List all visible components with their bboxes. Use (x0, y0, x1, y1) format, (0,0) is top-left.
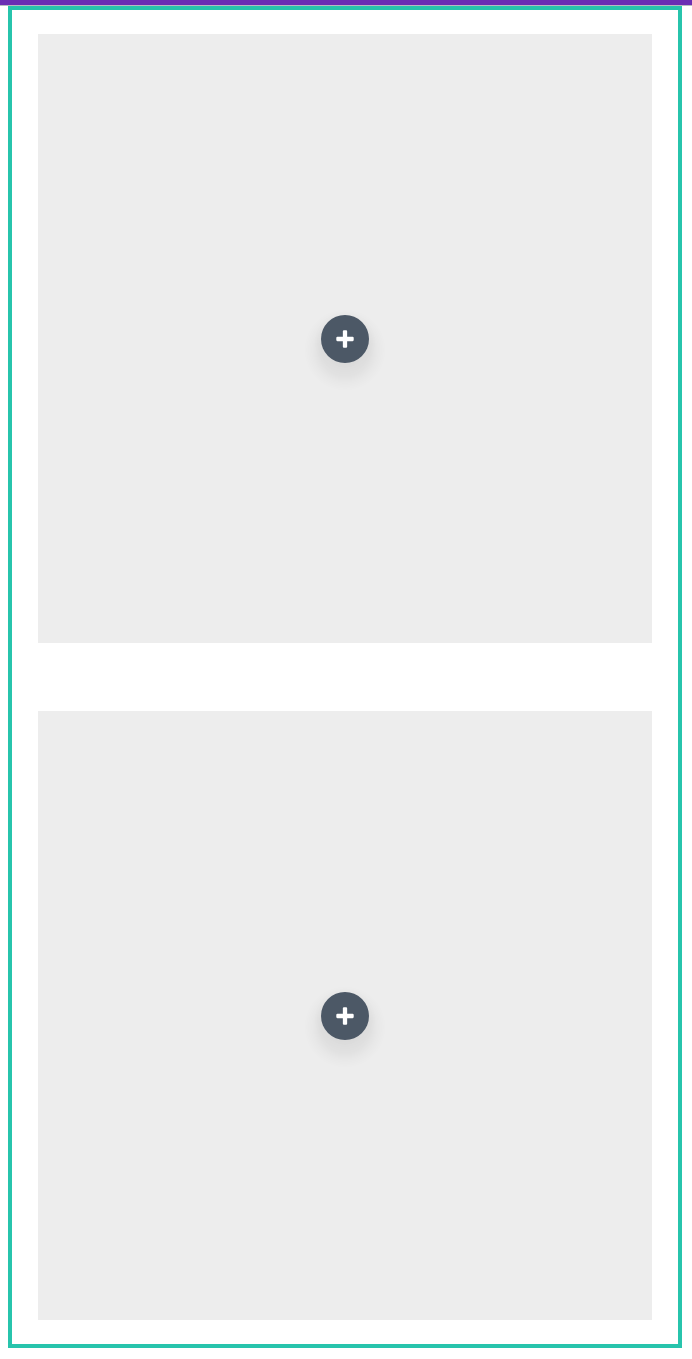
button[interactable]: Add image (38, 34, 652, 643)
button[interactable]: Add (321, 992, 369, 1040)
button[interactable]: Add (321, 315, 369, 363)
button[interactable]: Add image (38, 711, 652, 1320)
